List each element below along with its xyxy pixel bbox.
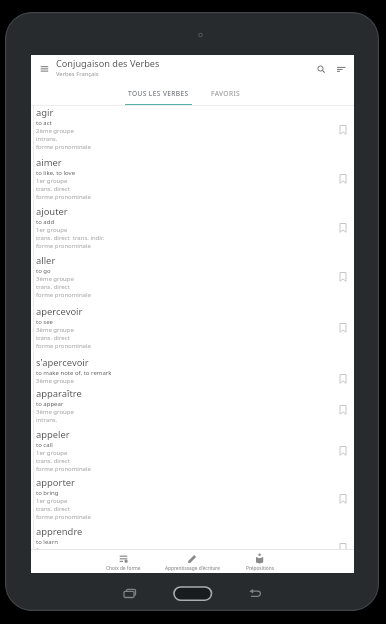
staticText: TOUS LES VERBES (128, 89, 189, 98)
button[interactable] (31, 204, 354, 252)
button[interactable] (311, 58, 331, 78)
staticText: 2ème groupe (36, 127, 74, 135)
staticText: intrans. (36, 416, 58, 424)
button[interactable] (31, 427, 354, 475)
staticText: forme pronominale (36, 291, 91, 299)
button[interactable] (31, 386, 354, 434)
button[interactable] (31, 55, 83, 83)
staticText: 1er groupe (36, 546, 68, 554)
staticText: to learn (36, 538, 58, 546)
staticText: apercevoir (36, 305, 83, 318)
button[interactable] (31, 155, 354, 203)
button[interactable] (334, 402, 352, 420)
staticText: Conjugaison des Verbes (56, 57, 160, 70)
staticText: to act (36, 119, 52, 127)
staticText: aimer (36, 156, 62, 169)
staticText: trans. direct (36, 505, 70, 513)
staticText: forme pronominale (36, 513, 91, 521)
staticText: to add (36, 218, 55, 226)
staticText: appeler (36, 428, 70, 441)
staticText: s'apercevoir (36, 356, 89, 369)
staticText: Verbes Français (56, 70, 99, 78)
staticText: agir (36, 106, 54, 119)
button[interactable] (334, 540, 352, 558)
button[interactable] (334, 220, 352, 238)
staticText: 1er groupe (36, 497, 68, 505)
staticText: trans. direct (36, 334, 70, 342)
button[interactable]: Prépositions (229, 550, 291, 572)
button[interactable] (334, 491, 352, 509)
staticText: to make note of, to remark (36, 369, 112, 377)
button[interactable]: Apprentissage d'écriture (161, 550, 223, 572)
staticText: 1er groupe (36, 449, 68, 457)
button[interactable] (31, 105, 354, 153)
button[interactable] (333, 58, 353, 78)
staticText: apporter (36, 476, 75, 489)
button[interactable] (334, 443, 352, 461)
button[interactable] (334, 122, 352, 140)
staticText: 3ème groupe (36, 326, 74, 334)
button[interactable] (31, 355, 354, 403)
button[interactable] (31, 524, 354, 572)
button[interactable] (334, 371, 352, 389)
staticText: ajouter (36, 205, 68, 218)
staticText: to call (36, 441, 53, 449)
staticText: aller (36, 254, 56, 267)
staticText: to appear (36, 400, 64, 408)
staticText: forme pronominale (36, 143, 91, 151)
staticText: trans. direct (36, 457, 70, 465)
staticText: to see (36, 318, 53, 326)
staticText: apprendre (36, 525, 83, 538)
button[interactable] (31, 475, 354, 523)
staticText: 3ème groupe (36, 275, 74, 283)
staticText: forme pronominale (36, 465, 91, 473)
staticText: forme pronominale (36, 342, 91, 350)
staticText: 1er groupe (36, 177, 68, 185)
button[interactable] (31, 304, 354, 352)
button[interactable]: TOUS LES VERBES (125, 83, 192, 104)
button[interactable] (334, 171, 352, 189)
staticText: apparaître (36, 387, 82, 400)
button[interactable] (334, 269, 352, 287)
staticText: Prépositions (246, 565, 275, 572)
button[interactable] (334, 320, 352, 338)
staticText: to go (36, 267, 51, 275)
staticText: trans. direct trans. indir. (36, 234, 105, 242)
staticText: trans. direct (36, 185, 70, 193)
button[interactable] (31, 253, 354, 301)
button[interactable]: FAVORIS (192, 83, 259, 104)
staticText: forme pronominale (36, 193, 91, 201)
staticText: trans. direct (36, 283, 70, 291)
staticText: FAVORIS (211, 89, 241, 98)
staticText: intrans. (36, 135, 58, 143)
staticText: Choix de forme (106, 565, 141, 572)
staticText: Apprentissage d'écriture (165, 565, 220, 572)
staticText: to bring (36, 489, 59, 497)
staticText: forme pronominale (36, 242, 91, 250)
staticText: 1er groupe (36, 226, 68, 234)
staticText: to like, to love (36, 169, 76, 177)
button[interactable]: Choix de forme (93, 550, 154, 572)
staticText: 3ème groupe (36, 408, 74, 416)
staticText: 3ème groupe (36, 377, 74, 385)
